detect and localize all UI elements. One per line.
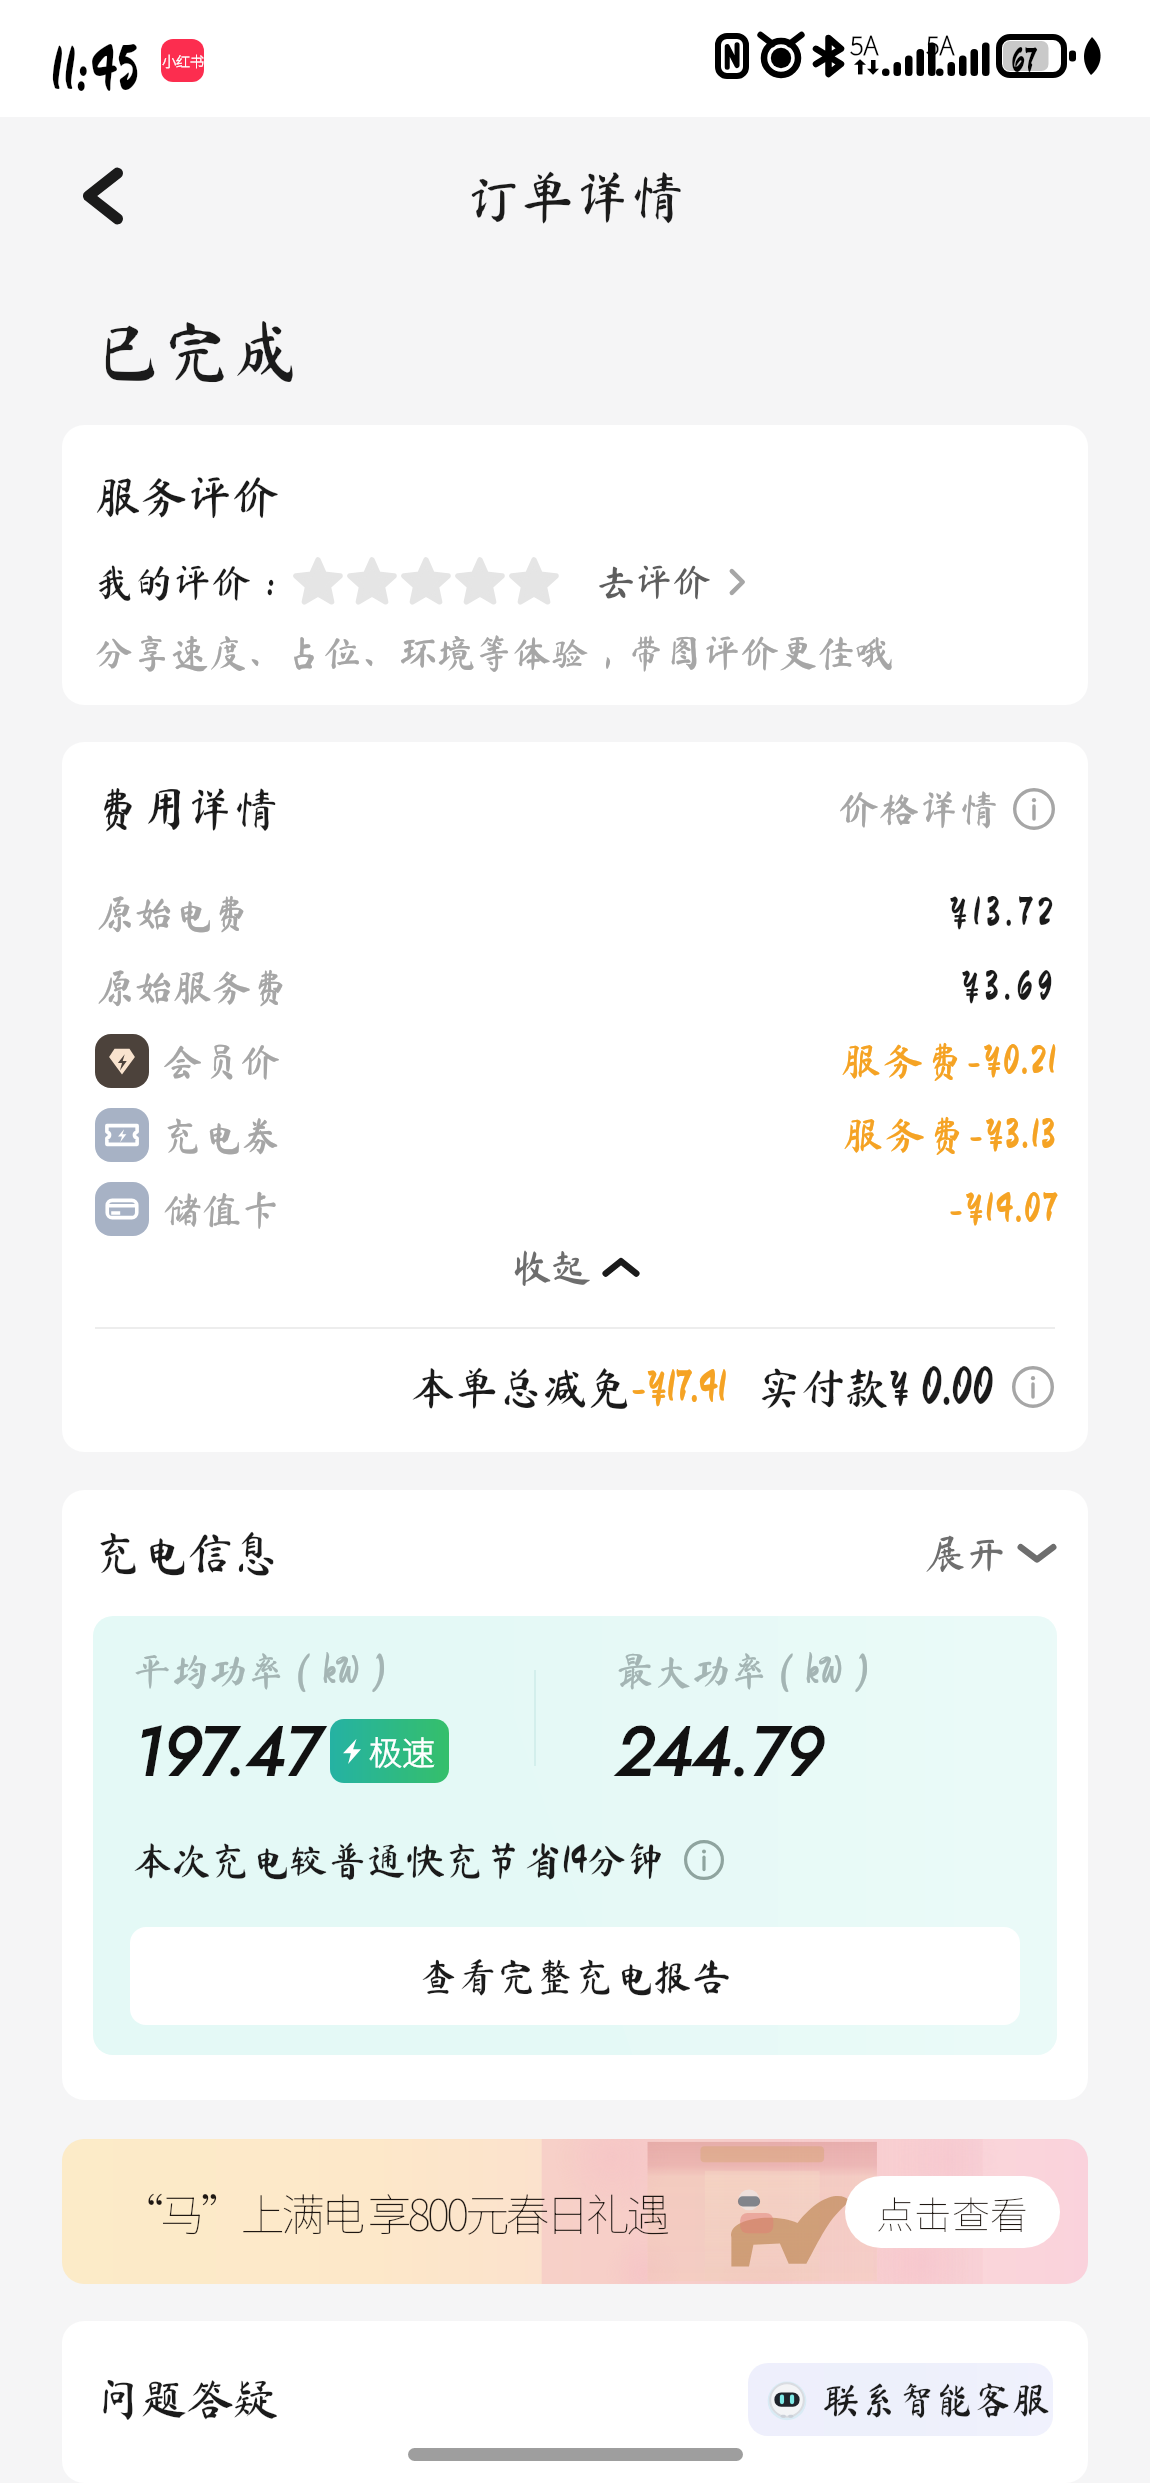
staticText: 5A xyxy=(926,25,955,63)
button[interactable]: 查看完整充电报告 xyxy=(130,1927,1020,2025)
staticText: 展开 xyxy=(925,1533,1005,1573)
staticText: ¥3.69 xyxy=(961,967,1058,1007)
staticText: 服务费-¥3.13 xyxy=(843,1115,1058,1155)
staticText: ¥13.72 xyxy=(949,893,1058,933)
button[interactable]: 联系智能客服 xyxy=(748,2363,1053,2436)
staticText: 充电券 xyxy=(163,1116,281,1155)
staticText: 价格详情 xyxy=(839,789,999,829)
staticText: 费用详情 xyxy=(95,786,279,832)
staticText: 实付款¥ xyxy=(757,1365,909,1409)
staticText: 充电信息 xyxy=(95,1530,279,1576)
staticText: 会员价 xyxy=(163,1042,281,1081)
staticText: -¥14.07 xyxy=(949,1189,1058,1229)
button[interactable]: 收起 xyxy=(62,1246,1088,1289)
staticText: 储值卡 xyxy=(163,1190,281,1229)
button[interactable]: 点击查看 xyxy=(845,2176,1060,2248)
staticText: -¥17.41 xyxy=(631,1365,727,1409)
staticText: 问题答疑 xyxy=(95,2376,279,2422)
button[interactable]: 价格详情 xyxy=(839,788,1055,830)
button[interactable]: 展开 xyxy=(925,1533,1055,1573)
staticText: 本次充电较普通快充节省14分钟 xyxy=(133,1841,666,1880)
staticText: 去评价 xyxy=(597,563,712,601)
staticText: 本单总减免 xyxy=(411,1365,631,1409)
staticText: 11:45 xyxy=(50,38,140,100)
staticText: “马”上满电 享800元春日礼遇 xyxy=(120,2180,667,2244)
staticText: 我的评价： xyxy=(95,563,291,602)
button[interactable]: Back xyxy=(56,148,152,244)
staticText: 小红书 xyxy=(162,51,204,71)
staticText: 极速 xyxy=(369,1727,435,1775)
staticText: 收起 xyxy=(513,1248,592,1287)
staticText: 原始电费 xyxy=(95,894,252,933)
staticText: 点击查看 xyxy=(876,2185,1029,2240)
button[interactable]: 去评价 xyxy=(597,563,750,601)
staticText: 服务评价 xyxy=(95,474,279,520)
staticText: 已完成 xyxy=(95,316,300,384)
staticText: 平均功率（kW） xyxy=(133,1652,398,1690)
staticText: 244.79 xyxy=(616,1702,823,1800)
staticText: 服务费-¥0.21 xyxy=(841,1041,1058,1081)
staticText: 最大功率（kW） xyxy=(616,1652,881,1690)
staticText: 0.00 xyxy=(921,1361,994,1413)
staticText: 原始服务费 xyxy=(95,968,291,1007)
staticText: 67 xyxy=(1011,44,1036,78)
staticText: 查看完整充电报告 xyxy=(419,1957,732,1996)
button[interactable]: “马”上满电 享800元春日礼遇 xyxy=(62,2139,1088,2284)
staticText: 分享速度、占位、环境等体验，带图评价更佳哦 xyxy=(95,634,894,672)
staticText: 197.47 xyxy=(133,1702,320,1800)
staticText: 5A xyxy=(850,25,879,63)
staticText: 联系智能客服 xyxy=(822,2381,1051,2419)
staticText: 订单详情 xyxy=(465,169,686,224)
